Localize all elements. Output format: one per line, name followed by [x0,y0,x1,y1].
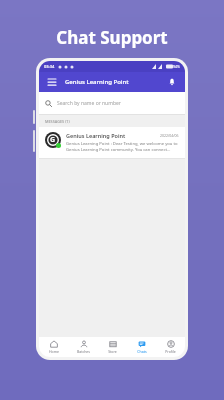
button[interactable]: G [39,127,185,158]
button[interactable]: Notifications [166,76,178,88]
staticText: Genius Learning Point [65,78,129,86]
button[interactable]: Profile [156,337,185,357]
staticText: MESSAGES (1) [45,119,70,124]
button[interactable]: Search by name or number [45,97,179,109]
button[interactable]: Open navigation menu [46,76,58,88]
staticText: Store [108,349,117,354]
button[interactable]: Home [39,337,69,357]
staticText: 94% [173,64,180,69]
button[interactable]: Chats [127,337,156,357]
button[interactable]: Store [98,337,127,357]
staticText: Home [49,349,59,354]
staticText: Genius Learning Point : Dear Testing, we… [66,141,179,153]
button[interactable]: Batches [69,337,98,357]
staticText: 03:34 [44,64,55,69]
staticText: 2022/04/06 [160,133,179,138]
staticText: Genius Learning Point [66,132,126,139]
staticText: Chats [137,349,147,354]
staticText: Profile [165,349,176,354]
staticText: Batches [77,349,90,354]
staticText: G [50,135,56,145]
staticText: Chat Support [56,26,168,49]
staticText: Search by name or number [57,100,121,107]
